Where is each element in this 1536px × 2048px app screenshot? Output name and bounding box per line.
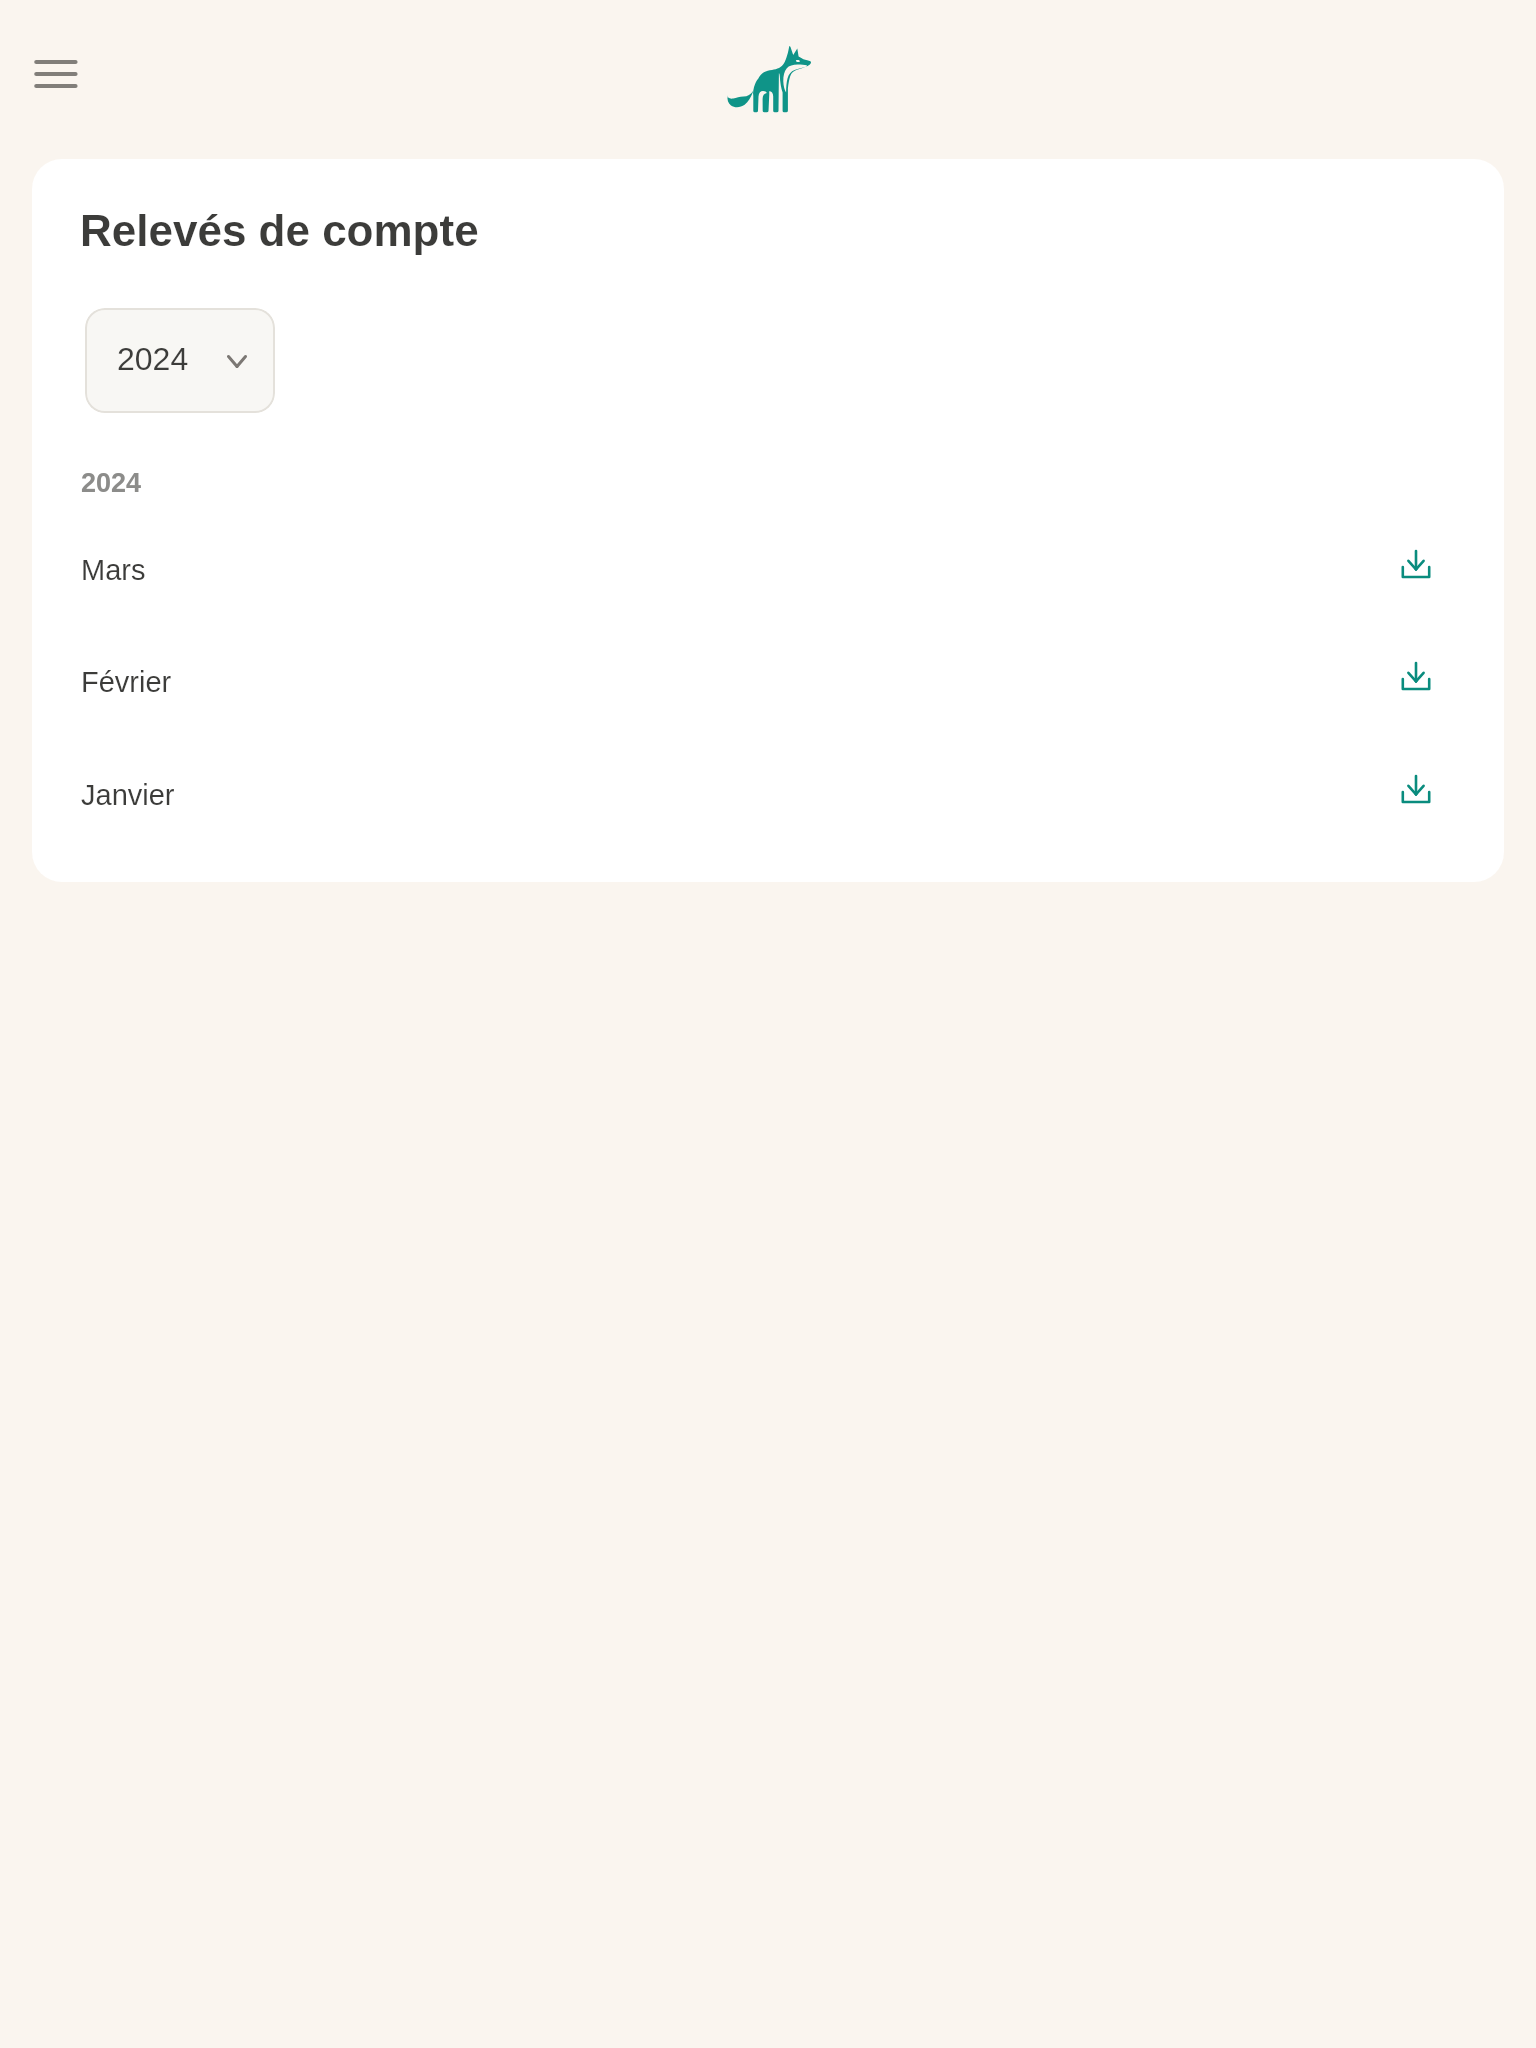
- button[interactable]: Février: [32, 626, 1504, 738]
- button[interactable]: Télécharger le relevé de Janvier: [1397, 770, 1435, 808]
- button[interactable]: Menu: [12, 38, 100, 110]
- button[interactable]: 2024: [85, 308, 275, 413]
- staticText: 2024: [81, 468, 142, 498]
- button[interactable]: Mars: [32, 514, 1504, 626]
- staticText: 2024: [117, 341, 189, 377]
- staticText: Mars: [81, 554, 146, 586]
- staticText: Relevés de compte: [80, 206, 479, 255]
- button[interactable]: Janvier: [32, 739, 1504, 851]
- staticText: Janvier: [81, 779, 175, 811]
- button[interactable]: Télécharger le relevé de Mars: [1397, 545, 1435, 583]
- button[interactable]: Télécharger le relevé de Février: [1397, 657, 1435, 695]
- staticText: Février: [81, 666, 172, 698]
